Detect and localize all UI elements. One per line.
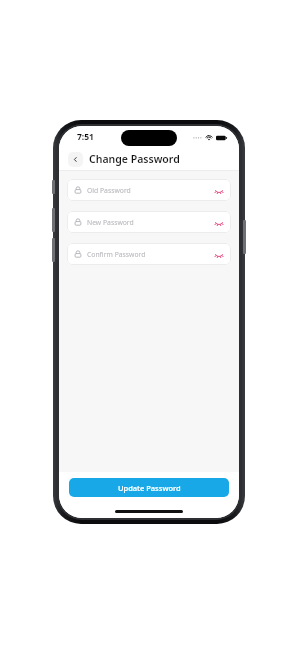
- button[interactable]: Confirm Password: [67, 243, 231, 265]
- staticText: Update Password: [118, 483, 181, 493]
- button[interactable]: Back: [68, 152, 83, 167]
- staticText: Change Password: [89, 152, 180, 166]
- staticText: Old Password: [87, 186, 131, 195]
- button[interactable]: New Password: [67, 211, 231, 233]
- button[interactable]: Old Password: [67, 179, 231, 201]
- button[interactable]: Update Password: [69, 478, 229, 497]
- staticText: Confirm Password: [87, 250, 146, 259]
- button[interactable]: Toggle password visibility: [213, 217, 224, 228]
- button[interactable]: Toggle password visibility: [213, 249, 224, 260]
- button[interactable]: Toggle password visibility: [213, 185, 224, 196]
- staticText: 7:51: [77, 131, 94, 143]
- staticText: New Password: [87, 218, 134, 227]
